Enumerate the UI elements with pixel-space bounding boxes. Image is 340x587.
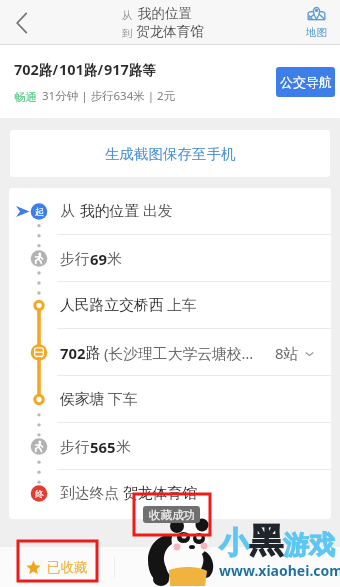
staticText: 小 bbox=[219, 524, 249, 562]
staticText: 终 bbox=[35, 488, 44, 499]
staticText: 路/ bbox=[84, 61, 104, 79]
staticText: 565 bbox=[90, 437, 116, 457]
staticText: 已收藏 bbox=[47, 559, 88, 576]
staticText: 侯家塘 bbox=[60, 390, 105, 409]
button[interactable]: Back bbox=[0, 1, 44, 45]
staticText: 黑 bbox=[249, 519, 283, 562]
button[interactable]: 公交导航 bbox=[276, 67, 335, 97]
staticText: 从 bbox=[122, 9, 133, 22]
staticText: 路等 bbox=[129, 62, 156, 79]
button[interactable]: 步行 bbox=[9, 235, 331, 282]
staticText: 游 bbox=[283, 529, 309, 562]
button[interactable]: 人民路立交桥西 bbox=[9, 282, 331, 329]
staticText: 畅通 bbox=[14, 90, 37, 104]
staticText: 702 bbox=[60, 343, 86, 363]
button[interactable]: 侯家塘 bbox=[9, 376, 331, 423]
button[interactable] bbox=[115, 547, 340, 587]
staticText: 步行 bbox=[60, 250, 90, 269]
button[interactable]: 步行 bbox=[9, 423, 331, 470]
staticText: 从 bbox=[60, 202, 75, 221]
staticText: 戏 bbox=[309, 529, 335, 562]
staticText: 702 bbox=[14, 59, 39, 79]
staticText: 贺龙体育馆 bbox=[123, 484, 197, 503]
staticText: 米 bbox=[116, 438, 131, 457]
staticText: 到达终点 bbox=[60, 484, 120, 503]
staticText: 出发 bbox=[143, 202, 173, 221]
staticText: 地图 bbox=[306, 26, 327, 39]
staticText: 到 bbox=[122, 27, 133, 40]
button[interactable]: 地图 bbox=[292, 0, 340, 45]
staticText: 贺龙体育馆 bbox=[136, 23, 204, 40]
staticText: 下车 bbox=[108, 390, 138, 409]
staticText: 上车 bbox=[167, 296, 197, 315]
staticText: 人民路立交桥西 bbox=[60, 296, 164, 315]
button[interactable]: 已收藏 bbox=[0, 547, 114, 587]
staticText: www.xiaohei.com bbox=[219, 561, 340, 580]
staticText: 路/ bbox=[39, 61, 59, 79]
staticText: 起 bbox=[35, 206, 44, 217]
staticText: 生成截图保存至手机 bbox=[105, 145, 236, 163]
button[interactable]: 生成截图保存至手机 bbox=[10, 130, 330, 177]
staticText: 我的位置 bbox=[80, 202, 140, 221]
staticText: 收藏成功 bbox=[149, 508, 195, 522]
staticText: 69 bbox=[90, 249, 107, 269]
staticText: 101 bbox=[59, 59, 84, 79]
staticText: 路 bbox=[86, 344, 101, 363]
staticText: 米 bbox=[107, 250, 122, 269]
staticText: (长沙理工大学云塘校… bbox=[104, 343, 254, 363]
staticText: 步行 bbox=[60, 438, 90, 457]
button[interactable]: 起 bbox=[9, 188, 331, 235]
button[interactable]: 终 bbox=[9, 470, 331, 517]
staticText: 公交导航 bbox=[280, 74, 332, 90]
staticText: 31分钟 | 步行634米 | 2元 bbox=[42, 88, 176, 104]
staticText: 917 bbox=[104, 59, 129, 79]
button[interactable]: 702 bbox=[9, 329, 331, 376]
staticText: 8站 bbox=[275, 343, 299, 363]
staticText: 我的位置 bbox=[138, 5, 192, 22]
